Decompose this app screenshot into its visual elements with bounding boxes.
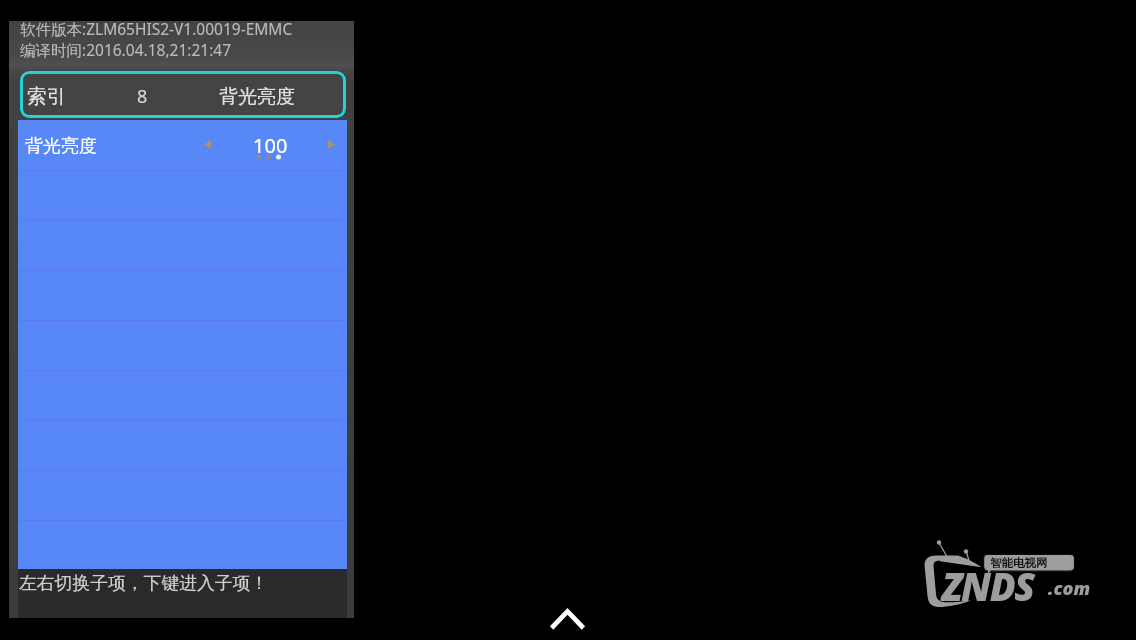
staticText: 背光亮度 <box>219 85 295 109</box>
staticText: 背光亮度 <box>25 135 97 158</box>
button[interactable]: Increase <box>316 129 347 160</box>
button[interactable]: Decrease <box>192 129 223 160</box>
staticText: 软件版本:ZLM65HIS2-V1.00019-EMMC <box>20 18 293 39</box>
button[interactable]: Scroll up <box>546 605 590 635</box>
staticText: ZNDS <box>942 560 1034 612</box>
staticText: .com <box>1048 576 1091 601</box>
button[interactable]: 索引 <box>20 71 346 118</box>
staticText: 索引 <box>27 84 66 109</box>
button[interactable] <box>18 520 347 570</box>
staticText: 8 <box>137 84 148 109</box>
staticText: 左右切换子项，下键进入子项！ <box>19 572 269 594</box>
button[interactable]: 背光亮度 <box>18 120 347 170</box>
staticText: 编译时间:2016.04.18,21:21:47 <box>20 39 232 60</box>
staticText: 100 <box>253 132 288 159</box>
staticText: 智能电视网 <box>990 556 1048 570</box>
